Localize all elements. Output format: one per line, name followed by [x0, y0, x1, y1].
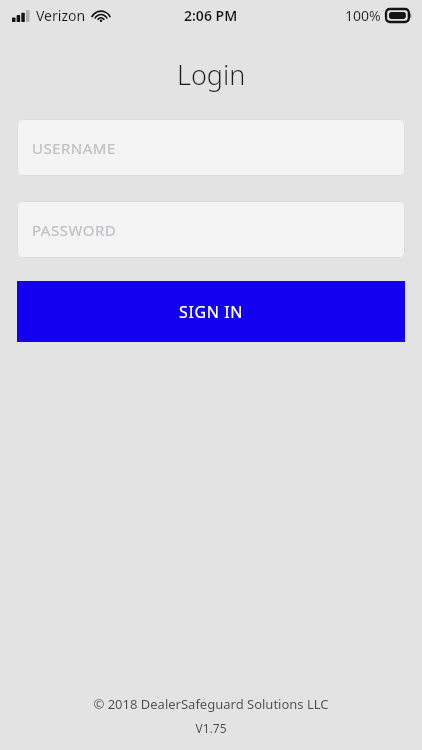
- staticText: USERNAME: [32, 138, 116, 158]
- button[interactable]: USERNAME: [17, 119, 405, 176]
- staticText: Login: [177, 56, 246, 93]
- button[interactable]: PASSWORD: [17, 201, 405, 258]
- staticText: PASSWORD: [32, 220, 117, 240]
- button[interactable]: SIGN IN: [17, 281, 405, 342]
- staticText: © 2018 DealerSafeguard Solutions LLC: [93, 695, 329, 713]
- staticText: 2:06 PM: [184, 6, 238, 25]
- staticText: Verizon: [36, 6, 86, 25]
- staticText: V1.75: [195, 720, 227, 736]
- staticText: SIGN IN: [179, 301, 243, 323]
- staticText: 100%: [345, 6, 381, 25]
